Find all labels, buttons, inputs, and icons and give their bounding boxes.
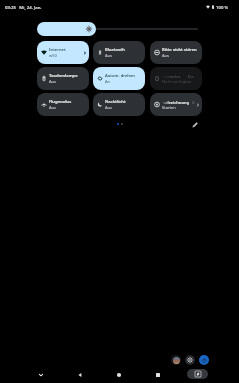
- staticText: Autom. drehen: [105, 73, 135, 79]
- button[interactable]: Zurück: [75, 370, 85, 380]
- button[interactable]: Ein/Aus: [199, 355, 209, 365]
- staticText: Aus: [162, 53, 169, 58]
- staticText: Energiesparmodus Ein: [150, 74, 195, 79]
- button[interactable]: Nutzer: [171, 355, 181, 365]
- button[interactable]: Einstellungen: [185, 355, 195, 365]
- staticText: Bluetooth: [105, 47, 125, 53]
- button[interactable]: Energiesparmodus Ein: [150, 67, 202, 90]
- button[interactable]: Autom. drehen: [93, 67, 145, 90]
- button[interactable]: Internet: [37, 41, 89, 64]
- button[interactable]: Startbildschirm: [114, 370, 124, 380]
- staticText: 03:25 Mi, 24. Jan.: [5, 4, 42, 10]
- staticText: Internet: [49, 47, 66, 53]
- staticText: Aus: [49, 105, 56, 110]
- button[interactable]: Flugmodus: [37, 93, 89, 116]
- staticText: Bitte nicht stören: [162, 47, 197, 53]
- button[interactable]: Bitte nicht stören: [150, 41, 202, 64]
- button[interactable]: Tastatur ausblenden: [36, 370, 46, 380]
- button[interactable]: Taschenlampe: [37, 67, 89, 90]
- staticText: Flugmodus: [49, 99, 72, 105]
- staticText: Taschenlampe: [49, 73, 78, 79]
- staticText: Starten: [162, 105, 176, 110]
- button[interactable]: Übersicht: [153, 370, 163, 380]
- button[interactable]: Helligkeit: [37, 22, 96, 36]
- staticText: Aus: [105, 53, 112, 58]
- staticText: An: [105, 79, 111, 84]
- staticText: Bildschirmaufzeichnung Bildschirmaufzeic…: [150, 100, 202, 105]
- button[interactable]: Bearbeiten: [190, 120, 200, 130]
- staticText: Nachtlicht: [105, 99, 126, 105]
- staticText: Aus: [105, 105, 112, 110]
- button[interactable]: Nachtlicht: [93, 93, 145, 116]
- staticText: Aus: [49, 79, 56, 84]
- staticText: 100 %: [216, 4, 229, 10]
- staticText: w50: [49, 53, 57, 58]
- staticText: Nicht verfügbar: [162, 79, 192, 84]
- button[interactable]: Bluetooth: [93, 41, 145, 64]
- button[interactable]: Screenshot: [187, 369, 208, 379]
- button[interactable]: Bildschirmaufzeichnung Bildschirmaufzeic…: [150, 93, 202, 116]
